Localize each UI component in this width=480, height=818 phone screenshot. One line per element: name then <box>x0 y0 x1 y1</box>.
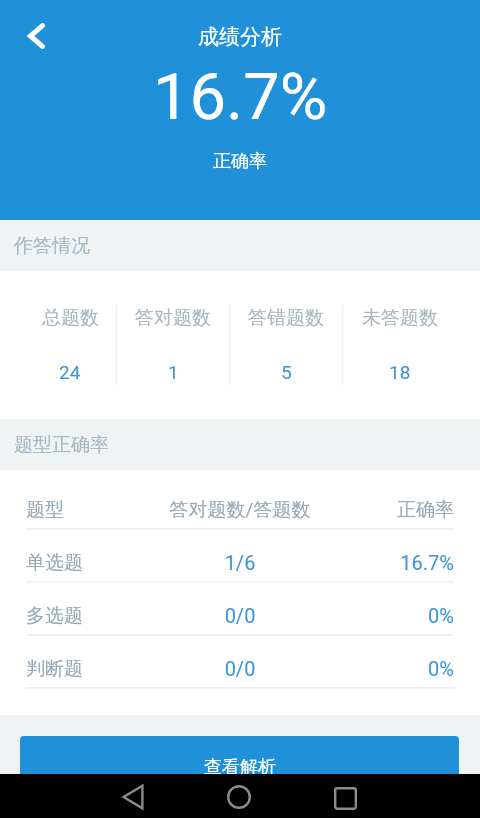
staticText: 题型正确率 <box>14 433 109 457</box>
staticText: 5 <box>281 361 292 383</box>
button[interactable]: 查看解析 <box>20 736 459 798</box>
staticText: 作答情况 <box>14 234 90 258</box>
staticText: 未答题数 <box>362 306 438 330</box>
staticText: 多选题 <box>26 604 136 628</box>
staticText: 24 <box>59 361 81 383</box>
staticText: 单选题 <box>26 551 136 575</box>
staticText: 答错题数 <box>248 306 324 330</box>
staticText: 0% <box>344 657 454 680</box>
staticText: 正确率 <box>344 498 454 522</box>
staticText: 1/6 <box>136 551 344 574</box>
staticText: 16.7% <box>153 59 328 127</box>
staticText: 答对题数 <box>135 306 211 330</box>
button[interactable]: Back <box>109 774 157 818</box>
staticText: 总题数 <box>42 306 99 330</box>
staticText: 判断题 <box>26 657 136 681</box>
staticText: 答对题数/答题数 <box>136 498 344 522</box>
staticText: 0/0 <box>136 604 344 627</box>
button[interactable]: Recent apps <box>321 774 369 818</box>
staticText: 16.7% <box>344 551 454 574</box>
staticText: 1 <box>168 361 179 383</box>
staticText: 18 <box>389 361 411 383</box>
staticText: 0/0 <box>136 657 344 680</box>
staticText: 成绩分析 <box>198 24 282 50</box>
staticText: 0% <box>344 604 454 627</box>
staticText: 正确率 <box>213 150 267 173</box>
button[interactable]: Back <box>9 12 57 60</box>
staticText: 查看解析 <box>204 756 276 779</box>
button[interactable]: Home <box>215 774 263 818</box>
staticText: 题型 <box>26 498 136 522</box>
